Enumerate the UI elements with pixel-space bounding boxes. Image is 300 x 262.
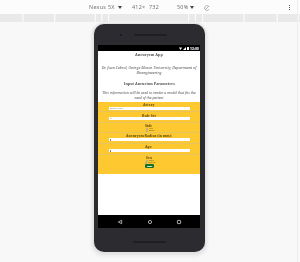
staticText: Artery: [143, 102, 155, 107]
staticText: 50%: [177, 3, 189, 10]
button[interactable]: [109, 149, 190, 152]
button[interactable]: Refresh: [203, 4, 210, 11]
button[interactable]: Recents: [174, 217, 183, 226]
button[interactable]: A1: [109, 117, 190, 120]
staticText: Input Aneurism Parameters: [124, 81, 175, 86]
staticText: 732: [149, 3, 160, 10]
staticText: Female: [148, 161, 156, 164]
staticText: Aneurysm Radius (in mm):: [126, 133, 172, 138]
button[interactable]: Right: [146, 129, 155, 132]
staticText: Sex: [146, 155, 153, 160]
button[interactable]: [109, 138, 190, 141]
staticText: This information will be used to render …: [98, 90, 200, 100]
staticText: A1: [110, 117, 113, 120]
staticText: Right: [149, 129, 155, 132]
staticText: Age:: [145, 144, 153, 149]
staticText: Nexus 5X: [89, 3, 115, 10]
staticText: Side: [145, 123, 153, 128]
button[interactable]: Basilar Artery: [109, 107, 190, 110]
button[interactable]: Back: [115, 217, 124, 226]
button[interactable]: Male: [146, 159, 155, 162]
staticText: ×: [142, 3, 146, 10]
staticText: 12:30: [190, 46, 199, 51]
button[interactable]: Female: [145, 161, 156, 164]
staticText: 412: [132, 3, 143, 10]
button[interactable]: Left: [146, 127, 154, 130]
staticText: Left: [149, 127, 154, 130]
button[interactable]: NEXT: [145, 164, 154, 168]
button[interactable]: More options: [284, 1, 294, 13]
staticText: Rule Set: [142, 113, 156, 118]
staticText: Dr. Juan Cebral, George Mason University…: [98, 65, 200, 75]
staticText: Aneurysm App: [135, 52, 163, 57]
staticText: NEXT: [147, 165, 153, 168]
staticText: Male: [149, 159, 155, 162]
staticText: Basilar Artery: [110, 107, 124, 110]
button[interactable]: Home: [145, 217, 154, 226]
